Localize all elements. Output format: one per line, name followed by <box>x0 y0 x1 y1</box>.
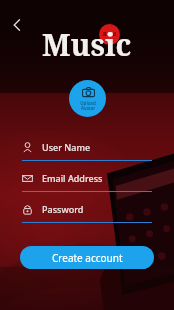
staticText: Password <box>42 203 84 215</box>
staticText: User Name <box>42 141 91 153</box>
button[interactable]: Password <box>22 198 152 229</box>
staticText: Music <box>42 24 132 65</box>
staticText: Email Address <box>42 172 103 184</box>
staticText: Upload Avatar <box>80 100 96 111</box>
button[interactable]: Create account <box>20 246 154 269</box>
button[interactable]: Upload Avatar <box>69 80 106 117</box>
staticText: Create account <box>52 251 123 265</box>
button[interactable]: Email Address <box>22 167 152 198</box>
button[interactable]: Back <box>4 12 30 38</box>
staticText: Band <box>103 31 116 38</box>
button[interactable]: User Name <box>22 136 152 167</box>
